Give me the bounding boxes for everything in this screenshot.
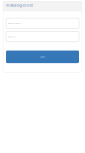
button[interactable]: Login — [6, 50, 79, 63]
staticText: Benutzername — [8, 22, 21, 25]
staticText: motozeiger.net — [5, 2, 32, 8]
staticText: Login — [40, 55, 45, 58]
staticText: Kennwort — [8, 35, 17, 38]
